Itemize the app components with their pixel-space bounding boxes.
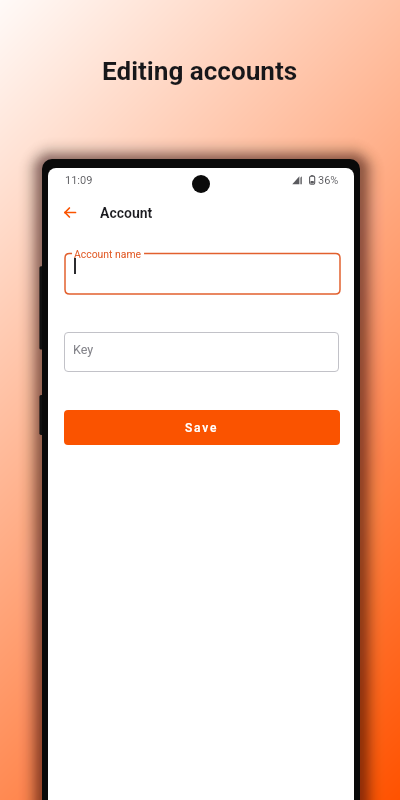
staticText: Account name — [74, 248, 142, 260]
button[interactable]: Key — [64, 332, 339, 372]
staticText: Account — [100, 205, 153, 221]
staticText: 36% — [318, 174, 339, 187]
button[interactable]: Back — [57, 199, 83, 225]
staticText: Editing accounts — [102, 56, 298, 87]
staticText: Key — [73, 342, 94, 357]
staticText: Save — [185, 421, 219, 435]
staticText: 11:09 — [65, 174, 93, 187]
button[interactable]: Account name — [65, 246, 340, 294]
button[interactable]: Save — [64, 410, 340, 445]
